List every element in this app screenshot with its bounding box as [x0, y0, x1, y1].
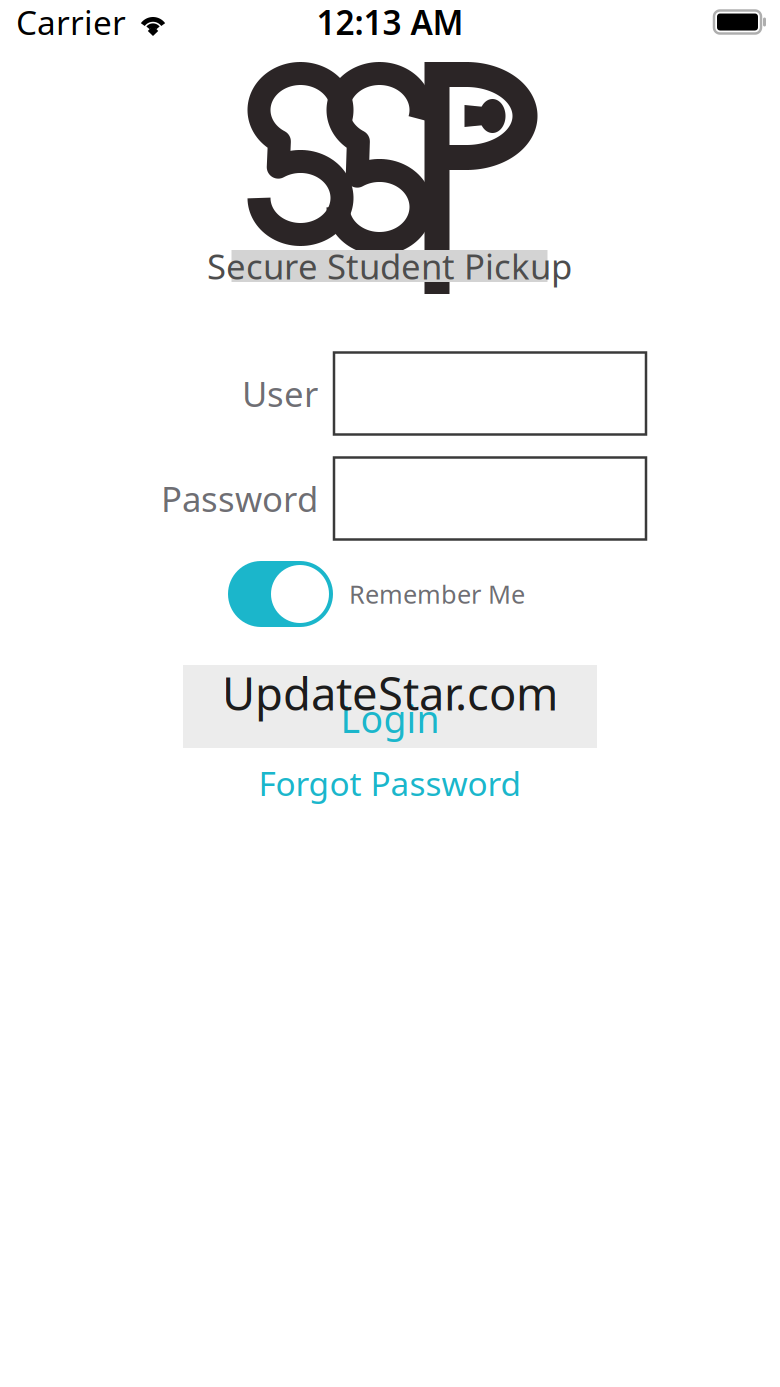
staticText: Remember Me — [349, 577, 525, 611]
button[interactable]: User — [334, 352, 646, 434]
staticText: User — [242, 370, 318, 416]
staticText: Login — [340, 694, 439, 743]
staticText: Carrier — [16, 0, 126, 44]
staticText: 12:13 AM — [316, 0, 463, 44]
staticText: Password — [161, 475, 318, 521]
button[interactable]: Password — [334, 457, 646, 539]
button[interactable]: Forgot Password — [258, 758, 521, 808]
button[interactable]: Login — [183, 665, 597, 748]
staticText: Forgot Password — [258, 761, 521, 805]
staticText: Secure Student Pickup — [207, 243, 572, 289]
staticText: UpdateStar.com — [222, 663, 558, 723]
button[interactable]: Remember Me — [134, 561, 646, 627]
